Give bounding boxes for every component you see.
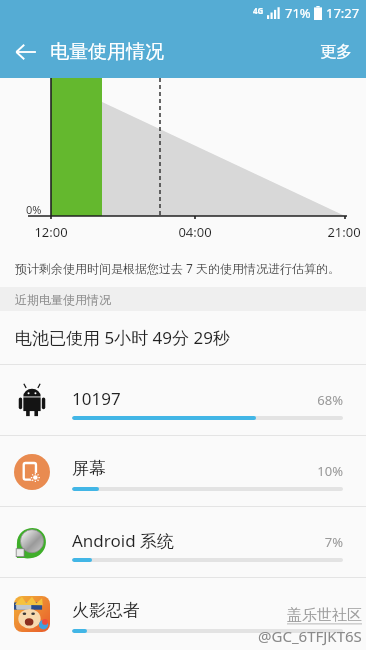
staticText: 21:00	[320, 223, 366, 241]
staticText: 更多	[320, 42, 352, 62]
button[interactable]: 更多	[306, 32, 366, 72]
staticText: Android 系统	[72, 529, 175, 552]
staticText: 10197	[72, 387, 121, 410]
button[interactable]: 屏幕	[0, 436, 366, 506]
staticText: 7%	[295, 533, 343, 551]
staticText: 近期电量使用情况	[15, 292, 111, 307]
staticText: 预计剩余使用时间是根据您过去 7 天的使用情况进行估算的。	[15, 260, 341, 276]
button[interactable]: Back	[6, 32, 46, 72]
staticText: 4G	[253, 5, 264, 16]
staticText: 17:27	[326, 4, 360, 22]
button[interactable]: 10197	[0, 365, 366, 435]
staticText: 68%	[295, 391, 343, 409]
staticText: 电量使用情况	[50, 40, 164, 64]
staticText: 10%	[295, 462, 343, 480]
staticText: 电池已使用 5小时 49分 29秒	[15, 326, 230, 349]
staticText: @GC_6TFJKT6S	[258, 626, 362, 646]
button[interactable]: Android 系统	[0, 507, 366, 577]
button[interactable]: 火影忍者	[0, 578, 366, 648]
staticText: 12:00	[27, 223, 75, 241]
staticText: 火影忍者	[72, 600, 140, 621]
staticText: 盖乐世社区	[287, 606, 362, 625]
staticText: 屏幕	[72, 458, 106, 479]
staticText: 0%	[26, 202, 42, 217]
staticText: 71%	[285, 4, 311, 22]
staticText: 04:00	[171, 223, 219, 241]
